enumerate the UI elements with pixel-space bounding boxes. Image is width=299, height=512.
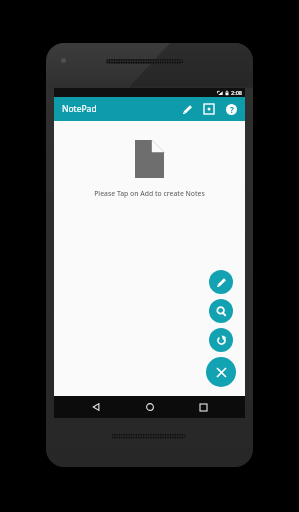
button[interactable]: Close [206, 357, 236, 387]
button[interactable]: Home [139, 396, 161, 418]
button[interactable]: Recents [192, 396, 214, 418]
staticText: ? [230, 104, 234, 115]
staticText: 2:08 [231, 89, 242, 96]
button[interactable]: Refresh [209, 328, 233, 352]
staticText: Please Tap on Add to create Notes [94, 189, 205, 198]
staticText: NotePad [62, 103, 97, 115]
button[interactable]: Add note [209, 270, 233, 294]
button[interactable]: Help [220, 98, 242, 120]
button[interactable]: Edit [176, 98, 198, 120]
button[interactable]: Settings [198, 98, 220, 120]
button[interactable]: Search [209, 299, 233, 323]
button[interactable]: Back [85, 396, 107, 418]
